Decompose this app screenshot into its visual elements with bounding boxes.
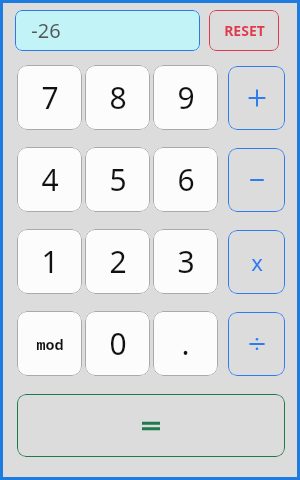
button[interactable]: 7 <box>17 65 82 130</box>
staticText: 3 <box>177 241 195 282</box>
staticText: mod <box>36 334 64 354</box>
button[interactable]: 0 <box>85 311 150 376</box>
button[interactable]: -26 <box>15 10 200 51</box>
button[interactable]: . <box>153 311 218 376</box>
staticText: 0 <box>109 323 127 364</box>
button[interactable]: 2 <box>85 229 150 294</box>
button[interactable]: 1 <box>17 229 82 294</box>
button[interactable]: 9 <box>153 65 218 130</box>
button[interactable]: plus <box>228 66 285 130</box>
staticText: 8 <box>109 77 127 118</box>
staticText: -26 <box>31 17 61 44</box>
button[interactable]: divide <box>228 312 285 376</box>
button[interactable]: times <box>228 230 285 294</box>
staticText: RESET <box>224 21 265 40</box>
staticText: 5 <box>109 159 127 200</box>
staticText: 6 <box>177 159 195 200</box>
staticText: 2 <box>109 241 127 282</box>
button[interactable]: 8 <box>85 65 150 130</box>
staticText: 9 <box>177 77 195 118</box>
button[interactable]: 5 <box>85 147 150 212</box>
staticText: . <box>181 323 190 364</box>
button[interactable]: Equals <box>17 394 285 457</box>
staticText: 1 <box>41 241 59 282</box>
staticText: 7 <box>41 77 59 118</box>
button[interactable]: minus <box>228 148 285 212</box>
button[interactable]: 4 <box>17 147 82 212</box>
button[interactable]: 6 <box>153 147 218 212</box>
button[interactable]: RESET <box>209 10 279 51</box>
button[interactable]: mod <box>17 311 82 376</box>
staticText: x <box>251 247 263 277</box>
button[interactable]: 3 <box>153 229 218 294</box>
staticText: 4 <box>41 159 59 200</box>
